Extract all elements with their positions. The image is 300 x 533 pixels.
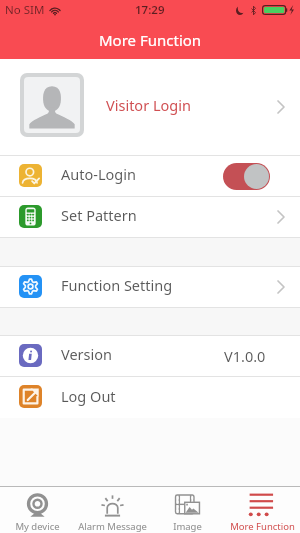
staticText: More Function (230, 520, 295, 533)
button[interactable]: Log Out (0, 377, 300, 418)
staticText: Set Pattern (61, 205, 137, 225)
staticText: Visitor Login (106, 95, 191, 115)
button[interactable]: Alarm Message (75, 487, 150, 533)
button[interactable]: My device (0, 487, 75, 533)
staticText: Function Setting (61, 275, 173, 295)
button[interactable]: Auto-Login toggle (223, 163, 270, 190)
button[interactable]: Function Setting (0, 267, 300, 307)
button[interactable]: Visitor Login (0, 59, 300, 155)
button[interactable]: Auto-Login (0, 156, 300, 196)
staticText: My device (15, 520, 60, 533)
staticText: V1.0.0 (224, 346, 266, 366)
button[interactable]: Version (0, 336, 300, 376)
staticText: No SIM (5, 2, 45, 18)
button[interactable]: Image (150, 487, 225, 533)
staticText: 17:29 (135, 2, 165, 18)
button[interactable]: Set Pattern (0, 197, 300, 237)
button[interactable]: More Function (225, 487, 300, 533)
staticText: Log Out (61, 386, 116, 406)
staticText: Image (173, 520, 202, 533)
staticText: More Function (99, 30, 202, 50)
staticText: Auto-Login (61, 164, 136, 184)
staticText: Version (61, 344, 112, 364)
staticText: Alarm Message (78, 520, 147, 533)
